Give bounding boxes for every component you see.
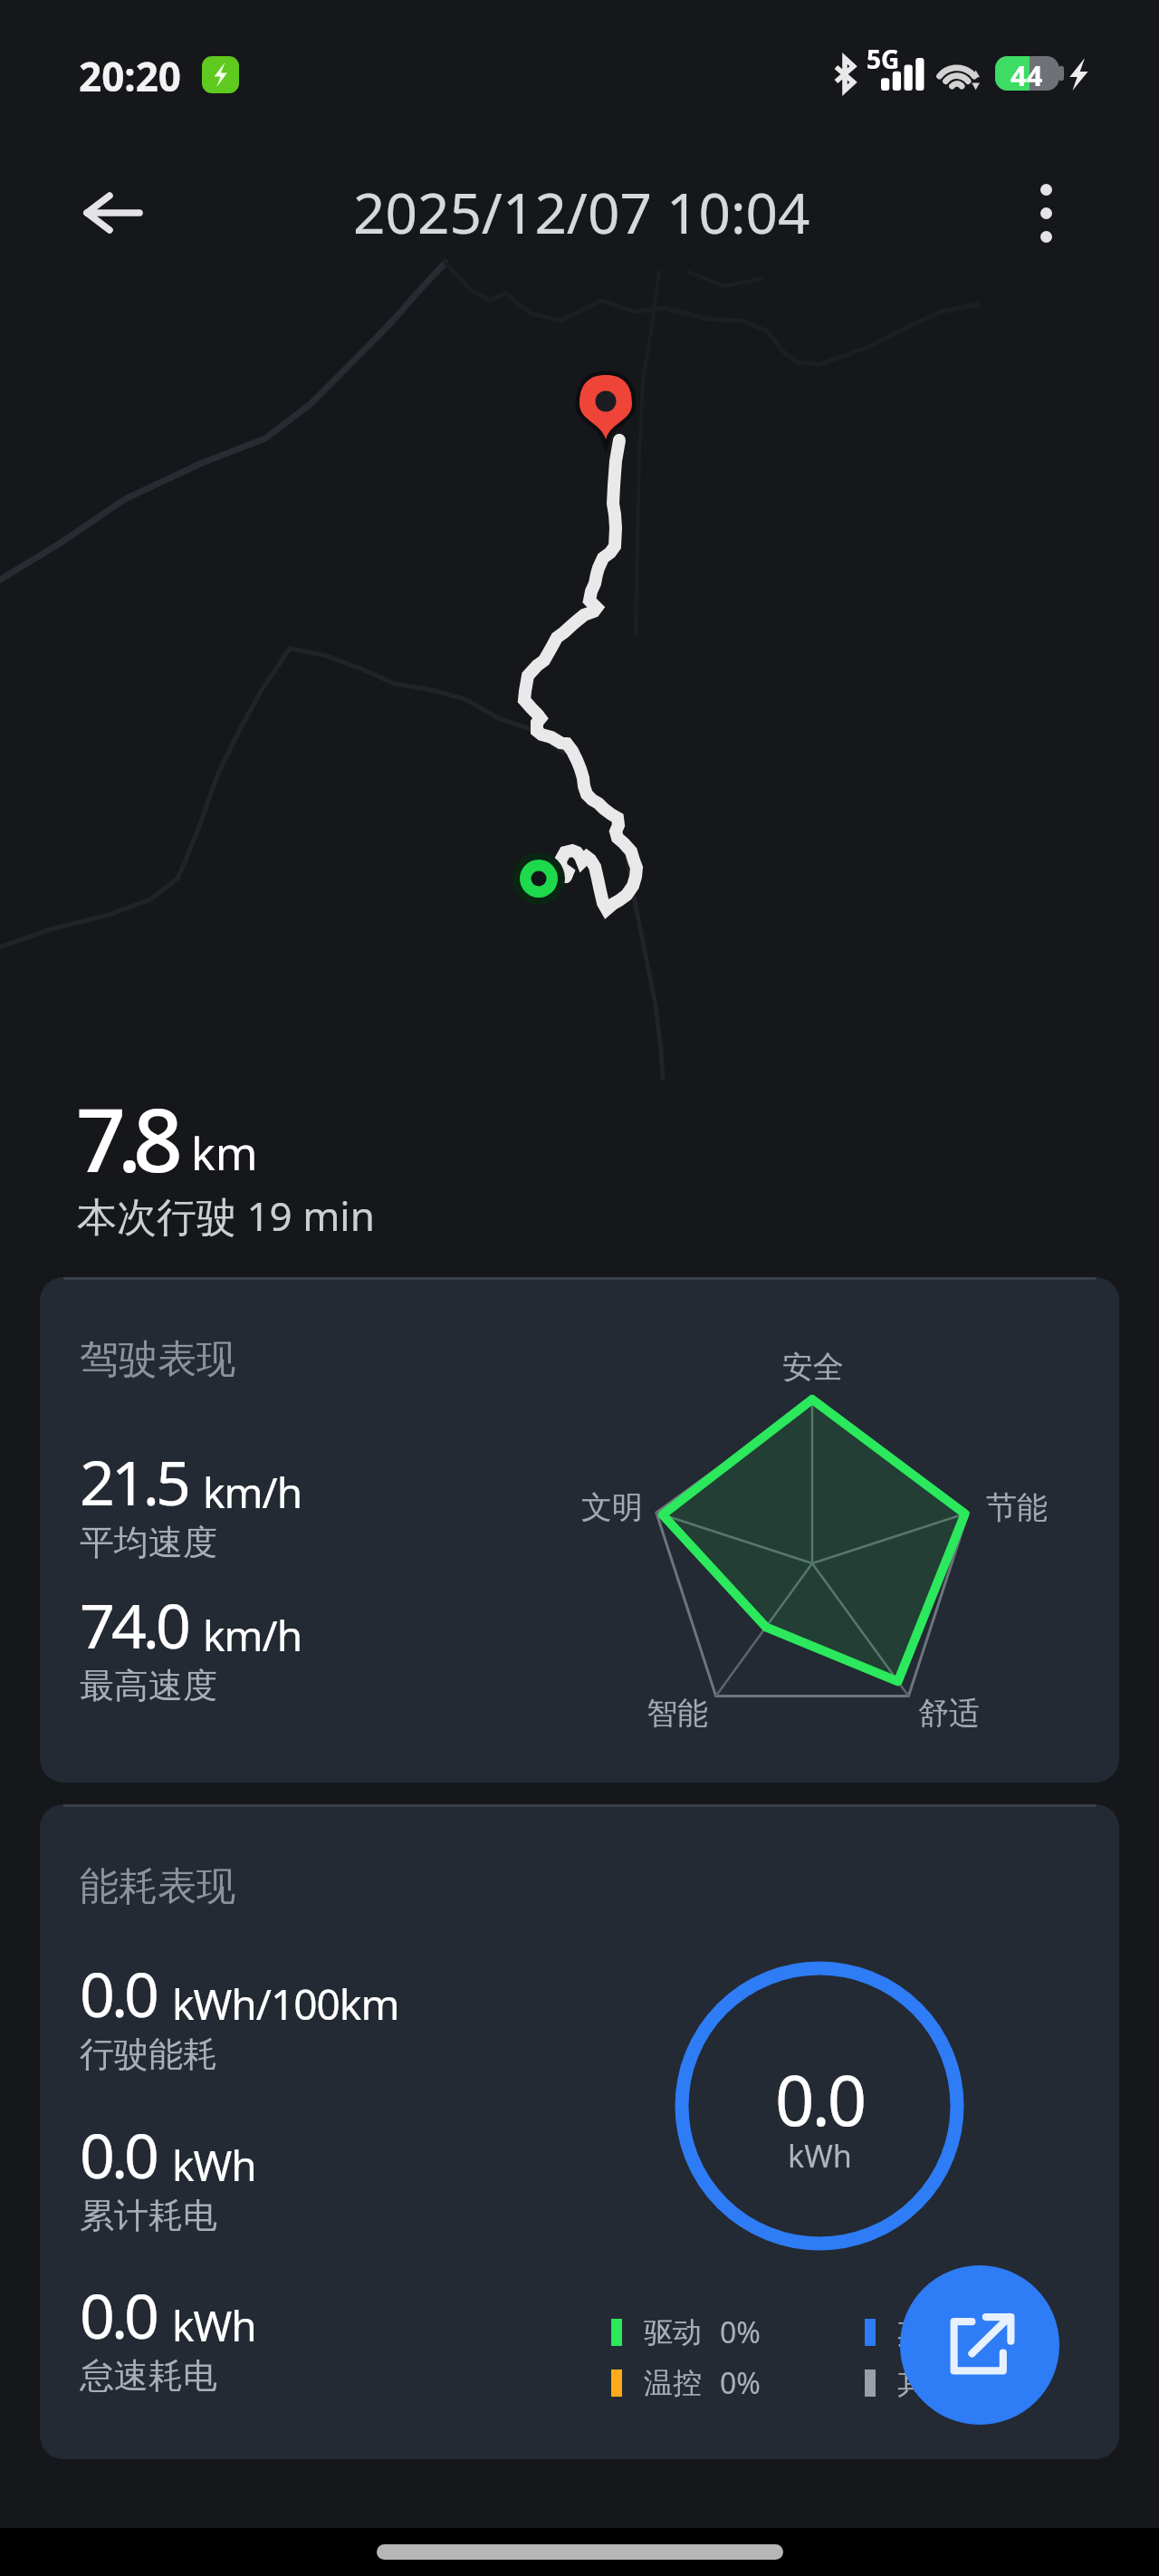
- staticText: 温控: [644, 2365, 702, 2401]
- staticText: 0.0: [80, 2112, 157, 2196]
- staticText: 文明: [581, 1488, 643, 1527]
- staticText: kWh: [172, 2137, 256, 2194]
- staticText: 0.0: [80, 1951, 157, 2035]
- staticText: 其他: [897, 2314, 955, 2350]
- staticText: 0%: [720, 2312, 761, 2352]
- staticText: kWh/100km: [172, 1975, 399, 2033]
- staticText: 20:20: [79, 49, 182, 103]
- staticText: 0.0: [80, 2273, 157, 2357]
- staticText: 平均速度: [80, 1521, 217, 1564]
- staticText: 0%: [973, 2363, 1014, 2403]
- staticText: kWh: [172, 2297, 256, 2354]
- staticText: 累计耗电: [80, 2194, 217, 2237]
- staticText: 行驶能耗: [80, 2033, 217, 2076]
- button[interactable]: 能耗表现: [40, 1804, 1119, 2459]
- button[interactable]: Open in new window: [900, 2265, 1059, 2425]
- staticText: 其他: [897, 2365, 955, 2401]
- staticText: 安全: [782, 1348, 844, 1387]
- staticText: 能耗表现: [80, 1862, 235, 1911]
- staticText: 44: [1011, 56, 1043, 91]
- staticText: 驾驶表现: [80, 1335, 235, 1384]
- staticText: 0%: [973, 2312, 1014, 2352]
- staticText: km/h: [203, 1607, 302, 1664]
- staticText: 5G: [867, 42, 900, 76]
- staticText: 0%: [720, 2363, 761, 2403]
- button[interactable]: More options: [989, 154, 1103, 272]
- staticText: 节能: [986, 1488, 1048, 1527]
- staticText: 智能: [647, 1694, 708, 1733]
- staticText: km: [191, 1122, 258, 1184]
- staticText: 21.5: [80, 1439, 187, 1523]
- staticText: 最高速度: [80, 1664, 217, 1707]
- staticText: kWh: [788, 2135, 852, 2177]
- staticText: 2025/12/07 10:04: [353, 174, 810, 250]
- staticText: 舒适: [918, 1694, 980, 1733]
- button[interactable]: Back: [54, 154, 172, 272]
- staticText: km/h: [203, 1464, 302, 1521]
- staticText: 74.0: [80, 1582, 187, 1667]
- staticText: 7.8: [76, 1079, 175, 1197]
- staticText: 本次行驶 19 min: [77, 1188, 375, 1243]
- button[interactable]: 驾驶表现: [40, 1277, 1119, 1783]
- staticText: 驱动: [644, 2314, 702, 2350]
- staticText: 怠速耗电: [80, 2354, 217, 2398]
- staticText: 0.0: [775, 2052, 865, 2147]
